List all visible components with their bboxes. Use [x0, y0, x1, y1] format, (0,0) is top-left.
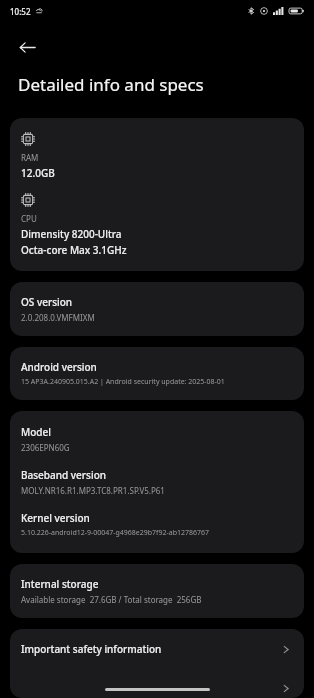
staticText: Octa-core Max 3.1GHz	[21, 243, 127, 257]
staticText: Model	[21, 425, 51, 439]
staticText: 10:52	[10, 6, 31, 17]
button[interactable]: Important safety information	[10, 629, 304, 669]
staticText: CPU	[21, 213, 37, 224]
staticText: 2306EPN60G	[21, 442, 70, 453]
staticText: Baseband version	[21, 468, 107, 482]
staticText: Important safety information	[21, 642, 162, 656]
button[interactable]: Back	[10, 30, 44, 64]
button[interactable]: Legal information	[10, 669, 304, 698]
staticText: OS version	[21, 295, 73, 309]
staticText: 5.10.226-android12-9-00047-g4968e29b7f92…	[21, 528, 209, 538]
staticText: Kernel version	[21, 511, 90, 525]
staticText: Available storage 27.6GB / Total storage…	[21, 594, 202, 605]
staticText: Detailed info and specs	[18, 73, 204, 96]
staticText: Dimensity 8200-Ultra	[21, 227, 122, 241]
staticText: 15 AP3A.240905.015.A2 | Android security…	[21, 377, 225, 387]
staticText: MOLY.NR16.R1.MP3.TC8.PR1.SP.V5.P61	[21, 485, 165, 496]
staticText: RAM	[21, 152, 39, 163]
staticText: 2.0.208.0.VMFMIXM	[21, 312, 95, 323]
staticText: 12.0GB	[21, 166, 55, 180]
staticText: Internal storage	[21, 577, 99, 591]
staticText: Android version	[21, 360, 97, 374]
